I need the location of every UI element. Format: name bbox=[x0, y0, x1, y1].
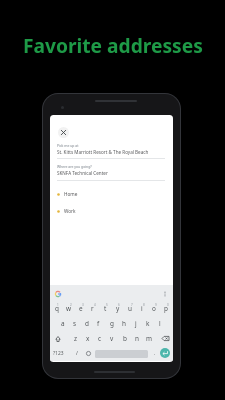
button[interactable]: Backspace bbox=[160, 331, 171, 346]
staticText: b bbox=[123, 334, 127, 343]
button[interactable]: b bbox=[119, 331, 130, 346]
staticText: Where are you going? bbox=[57, 164, 92, 169]
button[interactable]: d bbox=[81, 316, 92, 331]
staticText: g bbox=[110, 319, 114, 328]
staticText: 4 bbox=[94, 303, 96, 307]
staticText: 9 bbox=[155, 303, 157, 307]
staticText: e bbox=[79, 304, 83, 313]
staticText: / bbox=[76, 350, 78, 357]
button[interactable]: Work bbox=[50, 203, 173, 219]
button[interactable]: Enter bbox=[160, 348, 170, 358]
staticText: s bbox=[73, 319, 77, 328]
staticText: Pick me up at bbox=[57, 143, 79, 148]
button[interactable]: s bbox=[69, 316, 80, 331]
staticText: SKNFA Technical Center bbox=[57, 170, 108, 176]
staticText: 7 bbox=[131, 303, 133, 307]
button[interactable]: j bbox=[130, 316, 141, 331]
staticText: ?123 bbox=[53, 350, 64, 357]
staticText: x bbox=[86, 334, 90, 343]
staticText: St. Kitts Marriott Resort & The Royal Be… bbox=[57, 149, 149, 155]
button[interactable]: q bbox=[51, 301, 62, 316]
staticText: 1 bbox=[57, 303, 59, 307]
button[interactable]: e bbox=[75, 301, 86, 316]
button[interactable]: o bbox=[148, 301, 159, 316]
button[interactable]: Shift bbox=[52, 331, 63, 346]
button[interactable]: k bbox=[142, 316, 153, 331]
staticText: w bbox=[66, 304, 72, 313]
staticText: j bbox=[135, 319, 137, 328]
button[interactable]: Emoji bbox=[83, 346, 94, 361]
staticText: o bbox=[152, 304, 156, 313]
button[interactable]: . bbox=[150, 346, 160, 361]
button[interactable]: t bbox=[100, 301, 111, 316]
button[interactable]: z bbox=[70, 331, 81, 346]
staticText: Home bbox=[64, 191, 78, 197]
staticText: 6 bbox=[118, 303, 120, 307]
staticText: z bbox=[74, 334, 78, 343]
staticText: Work bbox=[64, 208, 76, 214]
staticText: 0 bbox=[167, 303, 169, 307]
staticText: Favorite addresses bbox=[23, 32, 203, 58]
staticText: n bbox=[135, 334, 139, 343]
staticText: a bbox=[61, 319, 65, 328]
staticText: m bbox=[146, 334, 152, 343]
button[interactable]: v bbox=[106, 331, 117, 346]
button[interactable]: ?123 bbox=[53, 346, 64, 361]
button[interactable]: n bbox=[131, 331, 142, 346]
staticText: v bbox=[110, 334, 114, 343]
button[interactable]: x bbox=[82, 331, 93, 346]
button[interactable]: Close bbox=[56, 125, 70, 139]
button[interactable]: g bbox=[106, 316, 117, 331]
staticText: y bbox=[116, 304, 120, 313]
staticText: k bbox=[146, 319, 150, 328]
button[interactable]: w bbox=[63, 301, 74, 316]
staticText: f bbox=[97, 319, 100, 328]
staticText: 3 bbox=[82, 303, 84, 307]
staticText: 2 bbox=[70, 303, 72, 307]
button[interactable]: u bbox=[124, 301, 135, 316]
staticText: . bbox=[154, 350, 156, 357]
staticText: h bbox=[122, 319, 126, 328]
button[interactable]: c bbox=[94, 331, 105, 346]
staticText: l bbox=[159, 319, 161, 328]
staticText: u bbox=[128, 304, 132, 313]
button[interactable]: Google bbox=[52, 288, 63, 299]
button[interactable]: y bbox=[112, 301, 123, 316]
button[interactable]: p bbox=[160, 301, 171, 316]
staticText: d bbox=[85, 319, 89, 328]
button[interactable]: / bbox=[71, 346, 82, 361]
button[interactable]: l bbox=[154, 316, 165, 331]
button[interactable]: h bbox=[118, 316, 129, 331]
staticText: 5 bbox=[106, 303, 108, 307]
staticText: t bbox=[104, 304, 107, 313]
button[interactable]: More options bbox=[159, 288, 170, 299]
button[interactable]: m bbox=[143, 331, 154, 346]
button[interactable]: a bbox=[57, 316, 68, 331]
button[interactable]: r bbox=[87, 301, 98, 316]
button[interactable]: Home bbox=[50, 186, 173, 202]
staticText: p bbox=[164, 304, 168, 313]
staticText: r bbox=[91, 304, 94, 313]
button[interactable]: f bbox=[93, 316, 104, 331]
staticText: c bbox=[98, 334, 102, 343]
staticText: i bbox=[141, 304, 143, 313]
button[interactable]: i bbox=[136, 301, 147, 316]
staticText: q bbox=[55, 304, 59, 313]
staticText: 8 bbox=[143, 303, 145, 307]
